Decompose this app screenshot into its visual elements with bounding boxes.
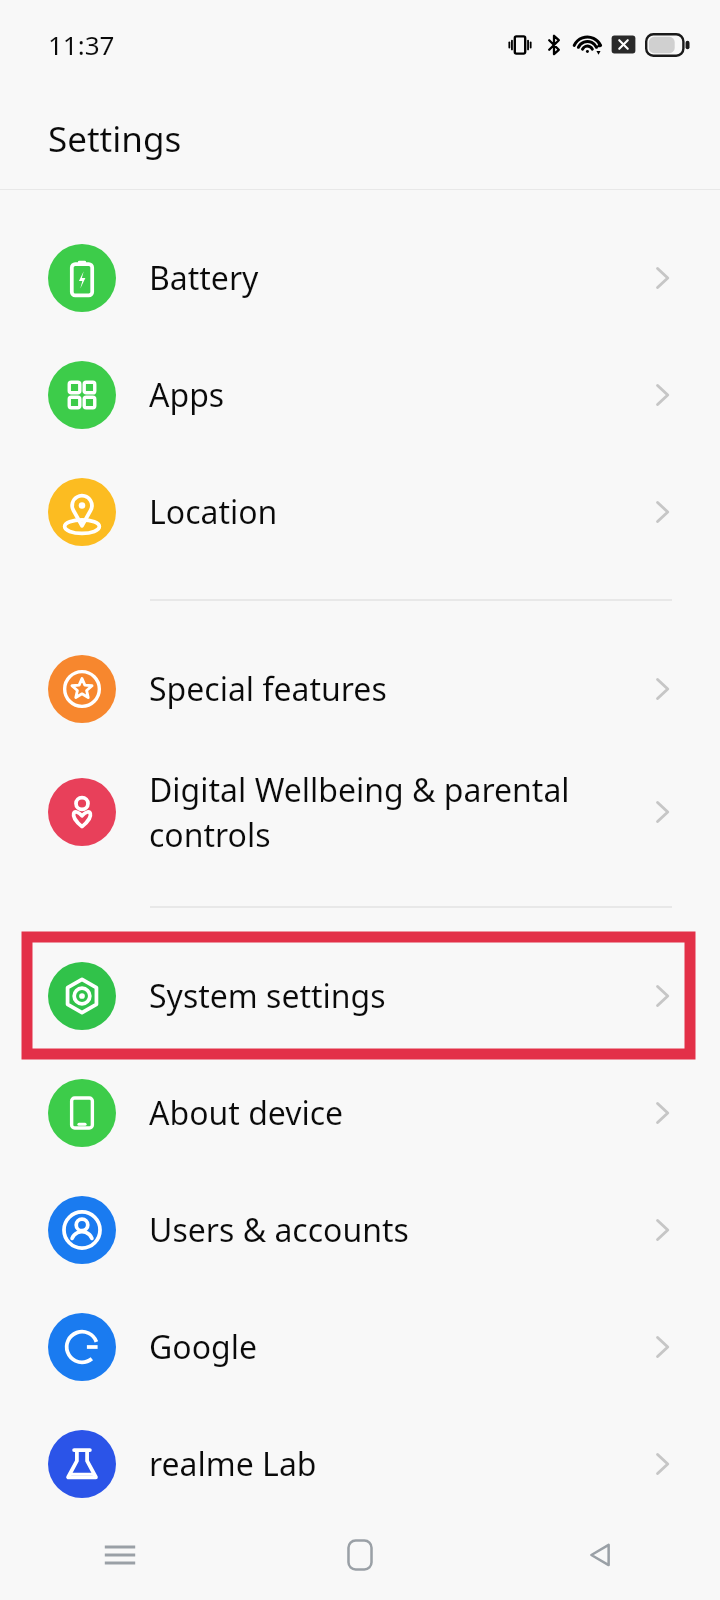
button[interactable]: Google (0, 1288, 720, 1405)
staticText: About device (149, 1091, 646, 1135)
button[interactable]: System settings (0, 937, 720, 1054)
staticText: Google (149, 1325, 646, 1369)
staticText: Location (149, 490, 646, 534)
button[interactable]: Battery (0, 219, 720, 336)
staticText: Digital Wellbeing & parental controls (149, 768, 646, 856)
staticText: Users & accounts (149, 1208, 646, 1252)
button[interactable]: Back (480, 1510, 720, 1600)
staticText: Apps (149, 373, 646, 417)
button[interactable]: Location (0, 453, 720, 570)
staticText: realme Lab (149, 1442, 646, 1486)
button[interactable]: About device (0, 1054, 720, 1171)
button[interactable]: Apps (0, 336, 720, 453)
staticText: Special features (149, 667, 646, 711)
button[interactable]: Digital Wellbeing & parental controls (0, 747, 720, 877)
button[interactable]: Home (240, 1510, 480, 1600)
staticText: Battery (149, 256, 646, 300)
staticText: 11:37 (48, 27, 115, 62)
staticText: Settings (48, 115, 182, 163)
button[interactable]: Special features (0, 630, 720, 747)
button[interactable]: Recent apps (0, 1510, 240, 1600)
button[interactable]: realme Lab (0, 1405, 720, 1522)
button[interactable]: Users & accounts (0, 1171, 720, 1288)
staticText: System settings (149, 974, 646, 1018)
